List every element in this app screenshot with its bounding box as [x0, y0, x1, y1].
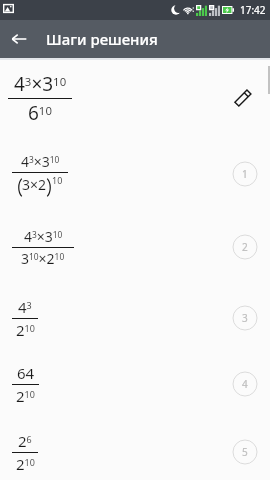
- button[interactable]: Step 4: [232, 371, 258, 397]
- staticText: 1: [242, 167, 248, 181]
- button[interactable]: Step 5: [232, 439, 258, 465]
- staticText: 310×210: [21, 249, 65, 268]
- staticText: 10: [52, 174, 63, 186]
- button[interactable]: Step 2: [232, 234, 258, 260]
- staticText: 610: [28, 100, 52, 126]
- staticText: 26: [18, 431, 32, 451]
- button[interactable]: 43×310: [0, 218, 270, 276]
- staticText: 43×310: [24, 227, 63, 246]
- staticText: 2: [242, 240, 248, 254]
- staticText: 17:42: [240, 3, 266, 17]
- button[interactable]: Step 3: [232, 305, 258, 331]
- button[interactable]: Step 1: [232, 161, 258, 187]
- button[interactable]: 26: [0, 424, 270, 480]
- staticText: 64: [17, 363, 35, 383]
- button[interactable]: 43×310: [0, 142, 270, 206]
- staticText: 210: [16, 386, 35, 406]
- staticText: 3×2: [22, 175, 47, 194]
- button[interactable]: 43: [0, 290, 270, 346]
- button[interactable]: 64: [0, 356, 270, 412]
- button[interactable]: Edit: [228, 83, 258, 113]
- staticText: 43: [18, 297, 32, 317]
- staticText: Шаги решения: [46, 29, 158, 49]
- staticText: 43×310: [14, 71, 67, 97]
- staticText: 4: [242, 377, 248, 391]
- staticText: 5: [242, 445, 248, 459]
- button[interactable]: Back: [0, 20, 38, 58]
- staticText: 210: [16, 454, 35, 474]
- staticText: 43×310: [21, 152, 60, 171]
- button[interactable]: 43×310: [0, 62, 270, 134]
- staticText: 3: [242, 311, 248, 325]
- staticText: 210: [16, 320, 35, 340]
